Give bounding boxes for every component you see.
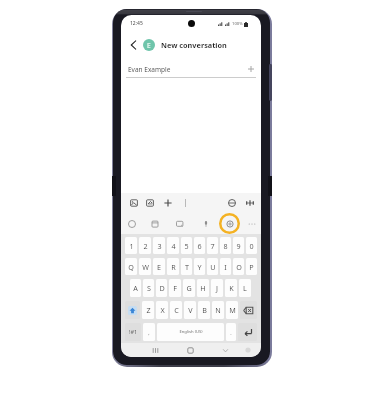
- button[interactable]: Emoji: [125, 217, 138, 230]
- staticText: C: [174, 305, 179, 315]
- button[interactable]: C: [170, 301, 182, 319]
- staticText: 100%: [232, 21, 243, 27]
- staticText: Q: [128, 262, 134, 272]
- staticText: F: [173, 283, 177, 293]
- button[interactable]: Y: [194, 258, 205, 275]
- button[interactable]: N: [212, 301, 224, 319]
- staticText: A: [133, 283, 138, 293]
- button[interactable]: J: [211, 279, 223, 297]
- button[interactable]: Settings: [219, 213, 240, 234]
- button[interactable]: Sticker: [143, 196, 156, 209]
- staticText: E: [147, 41, 151, 50]
- staticText: M: [229, 305, 236, 315]
- button[interactable]: English (US): [157, 323, 224, 341]
- button[interactable]: Z: [142, 301, 154, 319]
- staticText: E: [157, 262, 161, 272]
- button[interactable]: 9: [233, 237, 244, 254]
- staticText: New conversation: [161, 40, 227, 50]
- staticText: K: [229, 283, 234, 293]
- staticText: 9: [236, 241, 241, 251]
- button[interactable]: 0: [246, 237, 257, 254]
- button[interactable]: Home: [184, 344, 196, 356]
- staticText: O: [236, 262, 242, 272]
- staticText: !#1: [129, 328, 138, 336]
- staticText: 3: [157, 241, 162, 251]
- button[interactable]: E: [153, 258, 165, 275]
- button[interactable]: G: [183, 279, 195, 297]
- button[interactable]: Voice: [199, 217, 212, 230]
- button[interactable]: X: [156, 301, 168, 319]
- button[interactable]: Hide keyboard: [219, 344, 231, 356]
- button[interactable]: 1: [125, 237, 137, 254]
- button[interactable]: More options: [245, 217, 258, 230]
- button[interactable]: 5: [181, 237, 192, 254]
- button[interactable]: Expand: [243, 196, 256, 209]
- button[interactable]: Gallery: [127, 196, 140, 209]
- staticText: W: [142, 262, 149, 272]
- button[interactable]: B: [198, 301, 210, 319]
- staticText: I: [224, 262, 227, 272]
- button[interactable]: 2: [139, 237, 151, 254]
- button[interactable]: O: [233, 258, 244, 275]
- button[interactable]: 3: [153, 237, 165, 254]
- staticText: B: [202, 305, 207, 315]
- button[interactable]: V: [184, 301, 196, 319]
- button[interactable]: K: [225, 279, 237, 297]
- staticText: V: [188, 305, 193, 315]
- button[interactable]: 6: [194, 237, 205, 254]
- staticText: 1: [129, 241, 134, 251]
- button[interactable]: Symbols: [125, 323, 141, 341]
- staticText: R: [171, 262, 176, 272]
- button[interactable]: S: [143, 279, 154, 297]
- staticText: X: [160, 305, 165, 315]
- staticText: Evan Example: [128, 65, 171, 74]
- staticText: H: [200, 283, 206, 293]
- button[interactable]: Q: [125, 258, 137, 275]
- staticText: English (US): [179, 329, 203, 335]
- staticText: N: [215, 305, 221, 315]
- button[interactable]: H: [197, 279, 209, 297]
- staticText: S: [147, 283, 151, 293]
- button[interactable]: Add recipient: [246, 64, 256, 74]
- button[interactable]: Shift: [125, 301, 140, 319]
- button[interactable]: L: [239, 279, 251, 297]
- button[interactable]: Stickers: [173, 217, 186, 230]
- button[interactable]: F: [169, 279, 181, 297]
- staticText: Z: [146, 305, 151, 315]
- staticText: 4: [171, 241, 176, 251]
- staticText: L: [243, 283, 247, 293]
- button[interactable]: Back: [126, 38, 139, 51]
- staticText: 6: [197, 241, 202, 251]
- staticText: P: [249, 262, 254, 272]
- staticText: J: [216, 283, 218, 293]
- button[interactable]: 8: [220, 237, 231, 254]
- staticText: D: [159, 283, 165, 293]
- button[interactable]: I: [220, 258, 231, 275]
- staticText: 8: [223, 241, 228, 251]
- button[interactable]: Recents: [149, 344, 161, 356]
- button[interactable]: P: [246, 258, 257, 275]
- button[interactable]: .: [226, 323, 236, 341]
- staticText: Y: [197, 262, 202, 272]
- button[interactable]: W: [139, 258, 151, 275]
- button[interactable]: ,: [143, 323, 155, 341]
- button[interactable]: U: [207, 258, 218, 275]
- staticText: .: [230, 329, 232, 336]
- button[interactable]: 4: [167, 237, 179, 254]
- button[interactable]: Enter: [238, 323, 257, 341]
- button[interactable]: Translate: [225, 196, 238, 209]
- button[interactable]: Add: [161, 196, 174, 209]
- button[interactable]: R: [167, 258, 179, 275]
- staticText: G: [186, 283, 192, 293]
- button[interactable]: A: [130, 279, 141, 297]
- button[interactable]: M: [226, 301, 238, 319]
- button[interactable]: Switch keyboard: [243, 345, 253, 355]
- button[interactable]: Clipboard: [148, 217, 161, 230]
- staticText: 0: [249, 241, 254, 251]
- staticText: U: [210, 262, 216, 272]
- button[interactable]: Backspace: [240, 301, 257, 319]
- staticText: 2: [143, 241, 148, 251]
- button[interactable]: 7: [207, 237, 218, 254]
- button[interactable]: T: [181, 258, 192, 275]
- button[interactable]: D: [156, 279, 167, 297]
